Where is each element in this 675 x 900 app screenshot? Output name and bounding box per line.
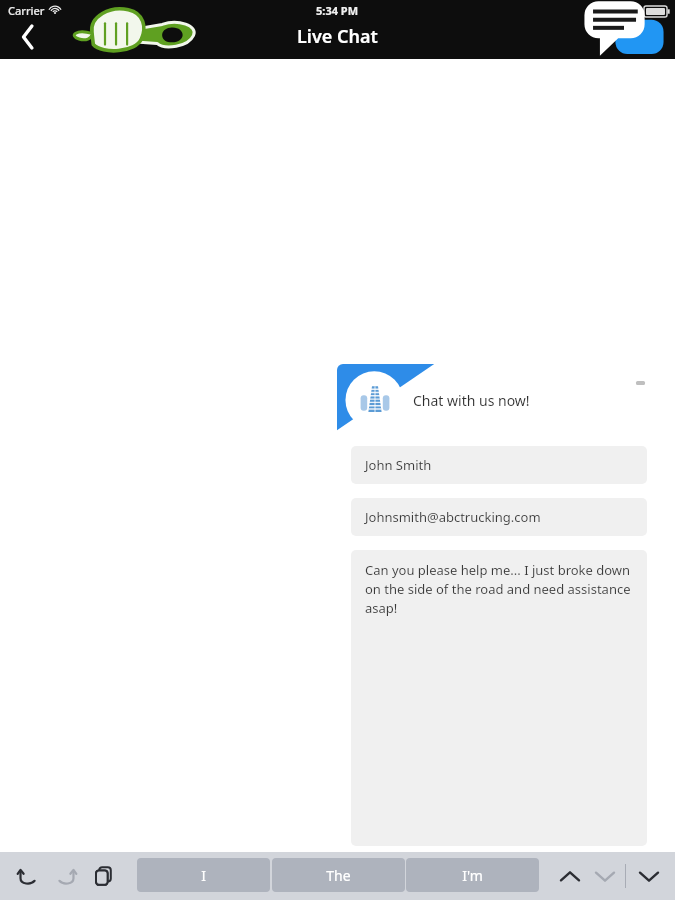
staticText: Can you please help me... I just broke d… <box>365 561 633 617</box>
staticText: Chat with us now! <box>413 391 530 410</box>
button[interactable]: Hide keyboard <box>629 858 669 894</box>
button[interactable]: Redo <box>47 859 85 893</box>
staticText: Live Chat <box>297 24 378 49</box>
button[interactable]: The <box>272 858 405 892</box>
button[interactable]: Next <box>586 858 624 894</box>
button[interactable]: Undo <box>9 859 47 893</box>
staticText: Carrier <box>8 3 45 18</box>
staticText: I'm <box>462 866 483 885</box>
staticText: John Smith <box>365 456 432 474</box>
staticText: Johnsmith@abctrucking.com <box>365 508 541 526</box>
button[interactable]: I <box>137 858 270 892</box>
button[interactable]: Back <box>8 20 48 54</box>
button[interactable]: Paste <box>85 859 123 893</box>
button[interactable]: Minimize <box>629 374 651 392</box>
button[interactable]: Can you please help me... I just broke d… <box>351 550 647 846</box>
button[interactable]: Chat <box>581 0 667 58</box>
staticText: The <box>326 866 351 885</box>
staticText: I <box>201 866 206 885</box>
other: Logo <box>66 2 196 58</box>
button[interactable]: Johnsmith@abctrucking.com <box>351 498 647 536</box>
staticText: 5:34 PM <box>316 3 359 18</box>
button[interactable]: Previous <box>551 858 589 894</box>
button[interactable]: I'm <box>406 858 539 892</box>
button[interactable]: John Smith <box>351 446 647 484</box>
